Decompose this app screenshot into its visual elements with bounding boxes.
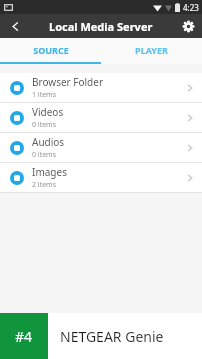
staticText: Images (32, 165, 67, 179)
button[interactable]: Back (0, 14, 30, 38)
button[interactable]: Audios (0, 133, 202, 162)
staticText: Local Media Server (49, 19, 153, 34)
staticText: Browser Folder (32, 75, 104, 89)
staticText: Videos (32, 105, 64, 119)
button[interactable]: Images (0, 163, 202, 192)
button[interactable]: Videos (0, 103, 202, 132)
staticText: NETGEAR Genie (60, 327, 164, 346)
staticText: 0 items (32, 120, 57, 130)
staticText: 2 items (32, 180, 57, 190)
staticText: Audios (32, 135, 65, 149)
button[interactable]: PLAYER (101, 38, 202, 62)
button[interactable]: SOURCE (0, 38, 101, 62)
button[interactable]: Browser Folder (0, 73, 202, 102)
staticText: #4 (15, 327, 33, 346)
staticText: 1 items (32, 90, 57, 100)
staticText: 0 items (32, 150, 57, 160)
staticText: 4:23 (183, 2, 199, 13)
button[interactable]: Settings (174, 14, 202, 38)
staticText: PLAYER (135, 44, 168, 56)
staticText: SOURCE (33, 44, 69, 56)
